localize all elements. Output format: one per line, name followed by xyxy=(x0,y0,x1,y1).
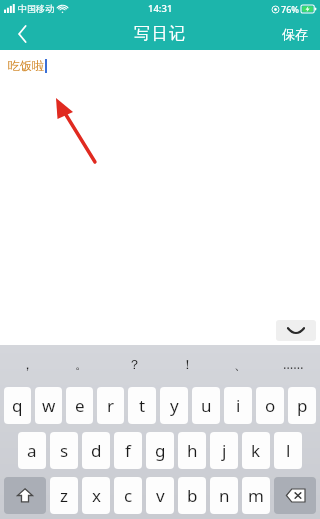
button[interactable]: t xyxy=(128,387,156,424)
button[interactable]: h xyxy=(178,432,206,469)
staticText: 写日记 xyxy=(134,24,187,44)
staticText: 76% xyxy=(281,3,299,15)
button[interactable]: m xyxy=(242,477,270,514)
staticText: g xyxy=(155,439,166,462)
staticText: l xyxy=(286,439,291,462)
button[interactable]: n xyxy=(210,477,238,514)
staticText: v xyxy=(156,484,165,507)
staticText: ！ xyxy=(181,356,194,372)
staticText: …… xyxy=(283,355,304,373)
staticText: 。 xyxy=(75,356,88,372)
staticText: q xyxy=(12,394,23,417)
button[interactable]: ？ xyxy=(108,345,161,383)
button[interactable]: g xyxy=(146,432,174,469)
button[interactable]: l xyxy=(274,432,302,469)
button[interactable]: x xyxy=(82,477,110,514)
button[interactable]: w xyxy=(35,387,62,424)
button[interactable]: Shift xyxy=(4,477,46,514)
button[interactable]: ， xyxy=(0,345,54,383)
staticText: 吃饭啦 xyxy=(8,58,44,73)
button[interactable]: z xyxy=(50,477,78,514)
button[interactable]: 保存 xyxy=(270,17,320,50)
staticText: 、 xyxy=(234,356,247,372)
button[interactable]: ！ xyxy=(161,345,214,383)
staticText: o xyxy=(265,394,276,417)
button[interactable]: i xyxy=(224,387,252,424)
button[interactable]: b xyxy=(178,477,206,514)
button[interactable]: v xyxy=(146,477,174,514)
button[interactable]: f xyxy=(114,432,142,469)
button[interactable]: p xyxy=(288,387,316,424)
button[interactable]: Backspace xyxy=(274,477,316,514)
staticText: ？ xyxy=(128,356,141,372)
button[interactable]: s xyxy=(50,432,78,469)
staticText: 中国移动 xyxy=(18,3,54,14)
staticText: z xyxy=(60,484,68,507)
button[interactable]: e xyxy=(66,387,93,424)
button[interactable]: 、 xyxy=(214,345,267,383)
staticText: ， xyxy=(21,356,34,372)
staticText: c xyxy=(124,484,133,507)
staticText: u xyxy=(201,394,212,417)
button[interactable]: a xyxy=(18,432,46,469)
button[interactable]: y xyxy=(160,387,188,424)
button[interactable]: q xyxy=(4,387,31,424)
button[interactable]: o xyxy=(256,387,284,424)
button[interactable]: 。 xyxy=(54,345,108,383)
staticText: t xyxy=(139,394,146,417)
button[interactable]: Back xyxy=(0,17,44,50)
button[interactable]: r xyxy=(97,387,124,424)
staticText: h xyxy=(187,439,198,462)
staticText: e xyxy=(75,394,85,417)
staticText: 14:31 xyxy=(148,2,173,15)
staticText: i xyxy=(236,394,241,417)
button[interactable]: u xyxy=(192,387,220,424)
staticText: a xyxy=(27,439,37,462)
button[interactable]: Hide keyboard xyxy=(276,320,316,341)
staticText: f xyxy=(125,439,131,462)
staticText: s xyxy=(60,439,69,462)
staticText: j xyxy=(222,439,227,462)
staticText: w xyxy=(42,394,56,417)
staticText: x xyxy=(92,484,101,507)
staticText: y xyxy=(170,394,179,417)
staticText: m xyxy=(248,484,264,507)
button[interactable]: d xyxy=(82,432,110,469)
staticText: r xyxy=(107,394,115,417)
staticText: n xyxy=(219,484,230,507)
button[interactable]: j xyxy=(210,432,238,469)
button[interactable]: k xyxy=(242,432,270,469)
staticText: p xyxy=(297,394,308,417)
button[interactable]: c xyxy=(114,477,142,514)
staticText: d xyxy=(91,439,102,462)
button[interactable]: …… xyxy=(267,345,320,383)
staticText: b xyxy=(187,484,198,507)
staticText: k xyxy=(251,439,261,462)
staticText: 保存 xyxy=(282,26,308,42)
